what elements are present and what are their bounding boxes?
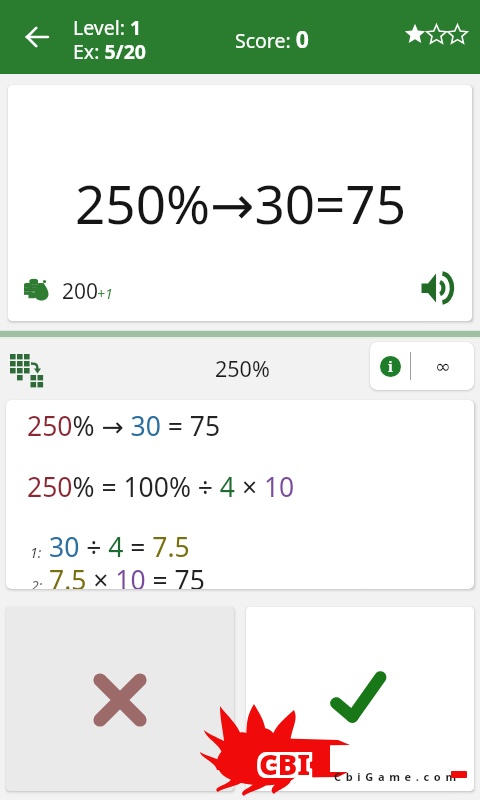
button[interactable]: Stars [404, 23, 468, 45]
staticText: 7.5 × 10 = 75 [49, 562, 205, 589]
button[interactable]: Change exercise [5, 346, 53, 394]
staticText: CBI [256, 744, 308, 783]
staticText: 250% → 30 = 75 [27, 408, 221, 444]
button[interactable]: Back [15, 15, 59, 59]
button[interactable]: Unlimited lives [411, 342, 474, 390]
staticText: CBI [256, 741, 308, 780]
staticText: CBI [262, 744, 314, 783]
button[interactable]: Wrong answer [6, 607, 234, 791]
staticText: CBI [262, 747, 314, 786]
staticText: +1 [97, 284, 113, 303]
staticText: CBI [262, 741, 314, 780]
staticText: ∞ [435, 355, 451, 377]
staticText: 1: [30, 543, 42, 562]
staticText: Level: 1 [73, 14, 142, 41]
staticText: 250%→30=75 [75, 167, 406, 239]
button[interactable]: Info [370, 342, 410, 390]
button[interactable]: Correct answer [246, 607, 474, 791]
staticText: i [388, 357, 393, 376]
button[interactable]: Sound [417, 268, 457, 308]
staticText: C b i G a m e . c o m [334, 769, 458, 784]
staticText: 2: [31, 576, 43, 589]
staticText: 250% [215, 354, 270, 383]
staticText: Score: 0 [235, 23, 309, 54]
staticText: CBI [259, 744, 311, 783]
staticText: CBI [256, 747, 308, 786]
staticText: 250% = 100% ÷ 4 × 10 [27, 469, 295, 505]
staticText: Ex: 5/20 [73, 38, 147, 65]
staticText: CBI [259, 747, 311, 786]
staticText: 30 ÷ 4 = 7.5 [49, 529, 190, 565]
staticText: 200 [62, 277, 99, 306]
staticText: CBI [259, 741, 311, 780]
